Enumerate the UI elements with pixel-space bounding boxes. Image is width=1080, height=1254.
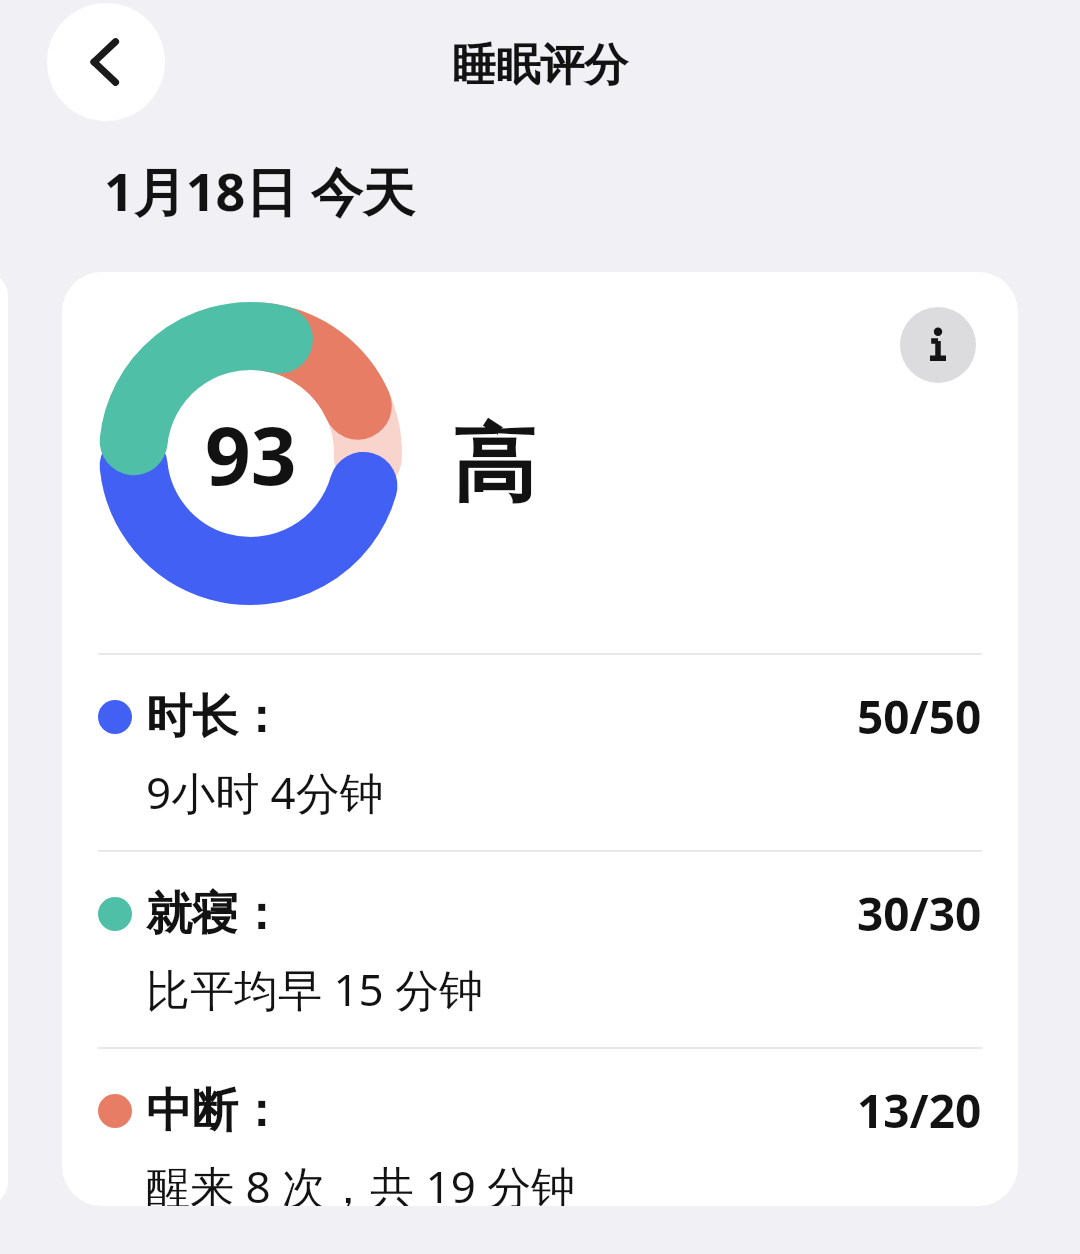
staticText: 醒来 8 次，共 19 分钟	[146, 1156, 576, 1206]
staticText: 93	[205, 399, 297, 508]
staticText: 50/50	[857, 685, 982, 748]
staticText: 时长：	[146, 688, 284, 746]
staticText: 9小时 4分钟	[146, 762, 384, 822]
staticText: 就寝：	[146, 885, 284, 943]
staticText: 30/30	[857, 882, 982, 945]
staticText: 1月18日 今天	[104, 155, 415, 226]
staticText: 中断：	[146, 1082, 284, 1140]
button[interactable]: 就寝：	[62, 852, 1018, 1047]
button[interactable]: Back	[47, 3, 165, 121]
button[interactable]: Info	[900, 307, 976, 383]
button[interactable]: 时长：	[62, 655, 1018, 850]
staticText: 睡眠评分	[452, 38, 628, 93]
staticText: 比平均早 15 分钟	[146, 959, 484, 1019]
button[interactable]: 中断：	[62, 1049, 1018, 1206]
staticText: 13/20	[857, 1079, 982, 1142]
staticText: 高	[452, 412, 536, 518]
